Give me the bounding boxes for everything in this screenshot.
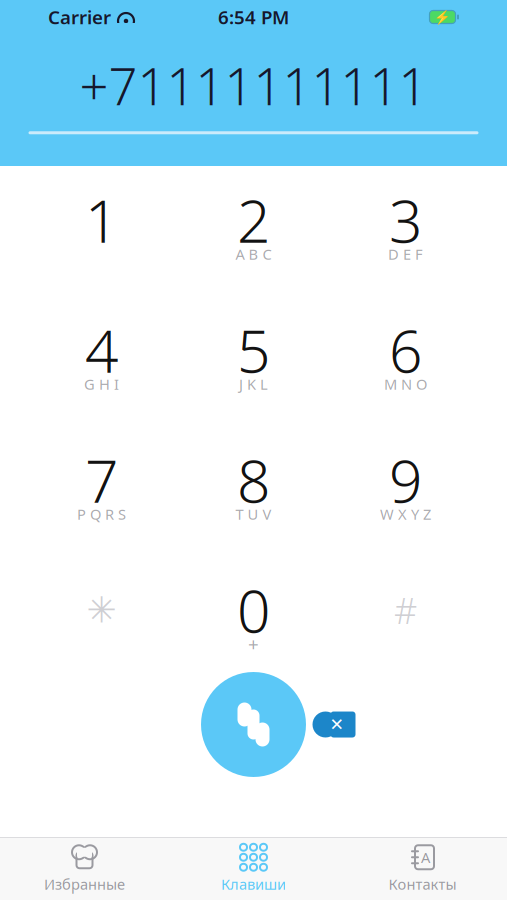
staticText: 9 <box>389 441 422 519</box>
staticText: + <box>248 632 259 656</box>
staticText: 8 <box>237 441 270 519</box>
staticText: Избранные <box>44 874 125 894</box>
button[interactable]: 3 <box>329 178 481 278</box>
button[interactable]: Избранные <box>0 838 169 900</box>
button[interactable]: 0 <box>177 568 329 668</box>
staticText: 6 <box>389 311 422 389</box>
staticText: 5 <box>237 311 270 389</box>
staticText: P Q R S <box>77 504 126 524</box>
button[interactable]: 7 <box>25 438 177 538</box>
button[interactable]: ✳ <box>25 568 177 668</box>
staticText: 7 <box>85 441 118 519</box>
staticText: A B C <box>235 244 271 264</box>
staticText: 1 <box>85 181 118 259</box>
staticText: 6:54 PM <box>218 5 289 29</box>
staticText: ⚡ <box>434 9 451 25</box>
button[interactable]: 2 <box>177 178 329 278</box>
button[interactable]: 1 <box>25 178 177 278</box>
staticText: 2 <box>237 181 270 259</box>
staticText: A <box>421 847 430 867</box>
staticText: # <box>394 586 417 634</box>
staticText: 0 <box>237 571 270 649</box>
staticText: Клавиши <box>221 874 286 894</box>
button[interactable]: # <box>329 568 481 668</box>
button[interactable]: 6 <box>329 308 481 408</box>
staticText: +71111111111 <box>79 52 427 119</box>
button[interactable]: Клавиши <box>169 838 338 900</box>
staticText: D E F <box>388 244 423 264</box>
button[interactable]: Call <box>201 672 306 777</box>
staticText: G H I <box>84 374 119 394</box>
staticText: 4 <box>85 311 118 389</box>
staticText: Carrier <box>48 5 111 29</box>
button[interactable]: 8 <box>177 438 329 538</box>
staticText: 3 <box>389 181 422 259</box>
button[interactable]: 4 <box>25 308 177 408</box>
staticText: J K L <box>239 374 268 394</box>
staticText: ✕ <box>329 715 344 734</box>
button[interactable]: 9 <box>329 438 481 538</box>
staticText: T U V <box>235 504 271 524</box>
staticText: M N O <box>384 374 427 394</box>
staticText: ✳ <box>86 590 116 630</box>
button[interactable]: 5 <box>177 308 329 408</box>
button[interactable]: A <box>338 838 507 900</box>
staticText: W X Y Z <box>380 504 431 524</box>
staticText: Контакты <box>388 874 456 894</box>
button[interactable]: Delete <box>306 702 362 746</box>
